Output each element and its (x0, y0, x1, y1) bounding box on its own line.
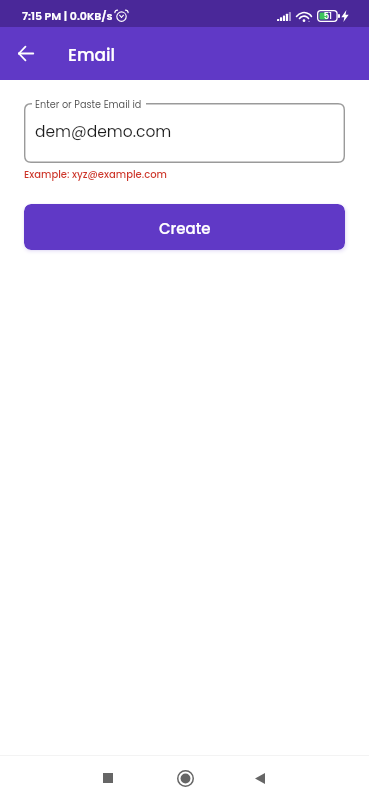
staticText: Example: xyz@example.com (24, 167, 167, 181)
button[interactable]: Home (161, 756, 209, 800)
staticText: 51 (324, 11, 332, 22)
button[interactable]: Recent apps (84, 756, 132, 800)
staticText: Enter or Paste Email id (35, 98, 142, 112)
staticText: 7:15 PM | 0.0KB/s (22, 8, 113, 23)
button[interactable]: Create (24, 204, 345, 250)
button[interactable]: Navigate up (7, 34, 45, 72)
staticText: Create (159, 218, 211, 239)
staticText: Email (68, 43, 116, 67)
staticText: dem@demo.com (35, 121, 172, 143)
button[interactable]: dem@demo.com (24, 103, 345, 163)
button[interactable]: Back (236, 756, 284, 800)
